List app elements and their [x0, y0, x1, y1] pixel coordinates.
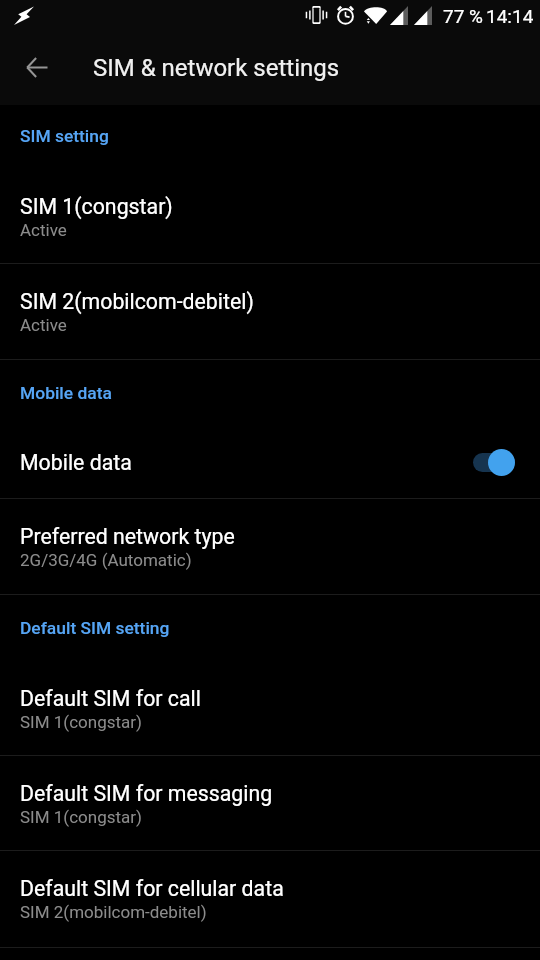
- staticText: 2G/3G/4G (Automatic): [20, 550, 192, 570]
- staticText: 14:14: [486, 5, 534, 27]
- staticText: Mobile data: [20, 450, 132, 475]
- staticText: SIM 1(congstar): [20, 807, 142, 827]
- staticText: 77 %: [443, 5, 483, 27]
- button[interactable]: SIM 1(congstar): [0, 169, 540, 263]
- button[interactable]: Default SIM for cellular data: [0, 851, 540, 947]
- staticText: Default SIM setting: [20, 618, 170, 638]
- staticText: Default SIM for cellular data: [20, 876, 284, 901]
- button[interactable]: Default SIM for call: [0, 661, 540, 755]
- button[interactable]: Mobile data: [0, 425, 540, 498]
- staticText: Default SIM for call: [20, 686, 201, 711]
- button[interactable]: Default SIM for messaging: [0, 756, 540, 850]
- button[interactable]: SIM 2(mobilcom-debitel): [0, 264, 540, 359]
- button[interactable]: Back: [13, 43, 61, 91]
- staticText: SIM & network settings: [93, 54, 340, 82]
- staticText: SIM 2(mobilcom-debitel): [20, 289, 254, 314]
- staticText: SIM 2(mobilcom-debitel): [20, 902, 207, 922]
- button[interactable]: Mobile data on: [470, 445, 518, 479]
- button[interactable]: Preferred network type: [0, 499, 540, 594]
- staticText: Default SIM for messaging: [20, 781, 273, 806]
- staticText: Preferred network type: [20, 524, 235, 549]
- staticText: SIM setting: [20, 126, 109, 146]
- staticText: SIM 1(congstar): [20, 712, 142, 732]
- staticText: Active: [20, 220, 67, 240]
- staticText: Mobile data: [20, 383, 112, 403]
- staticText: Active: [20, 315, 67, 335]
- staticText: SIM 1(congstar): [20, 194, 173, 219]
